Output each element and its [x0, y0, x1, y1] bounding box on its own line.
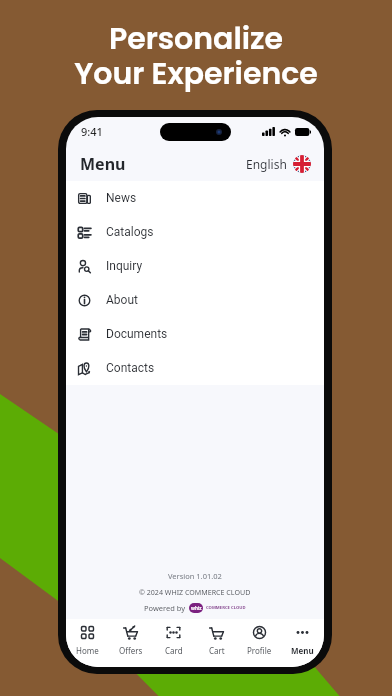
staticText: Powered by [144, 603, 186, 613]
staticText: whiz [191, 605, 202, 611]
staticText: Offers [119, 645, 143, 656]
staticText: News [106, 191, 137, 205]
button[interactable]: Contacts [66, 351, 324, 385]
staticText: Contacts [106, 361, 155, 375]
button[interactable]: About [66, 283, 324, 317]
button[interactable]: News [66, 181, 324, 215]
staticText: Personalize Your Experience [0, 18, 392, 95]
staticText: English [246, 156, 287, 172]
button[interactable]: Menu [281, 625, 324, 662]
button[interactable]: English [246, 155, 311, 173]
staticText: COMMERCE CLOUD [206, 605, 246, 611]
staticText: 9:41 [81, 124, 103, 139]
staticText: Profile [247, 645, 272, 656]
button[interactable]: Card [152, 625, 195, 662]
staticText: Catalogs [106, 225, 154, 239]
button[interactable]: Inquiry [66, 249, 324, 283]
staticText: Home [76, 645, 99, 656]
staticText: Inquiry [106, 259, 143, 273]
button[interactable]: Documents [66, 317, 324, 351]
staticText: Card [165, 645, 183, 656]
staticText: © 2024 WHIZ COMMERCE CLOUD [139, 587, 251, 597]
button[interactable]: Catalogs [66, 215, 324, 249]
other: Change language [293, 155, 311, 173]
staticText: Menu [291, 645, 314, 656]
button[interactable]: Profile [238, 625, 281, 662]
staticText: Documents [106, 327, 168, 341]
staticText: Version 1.01.02 [168, 571, 222, 581]
button[interactable]: Home [66, 625, 109, 662]
button[interactable]: Cart [195, 625, 238, 662]
staticText: About [106, 293, 138, 307]
staticText: Menu [80, 153, 126, 175]
button[interactable]: Offers [109, 625, 152, 662]
staticText: Cart [209, 645, 225, 656]
